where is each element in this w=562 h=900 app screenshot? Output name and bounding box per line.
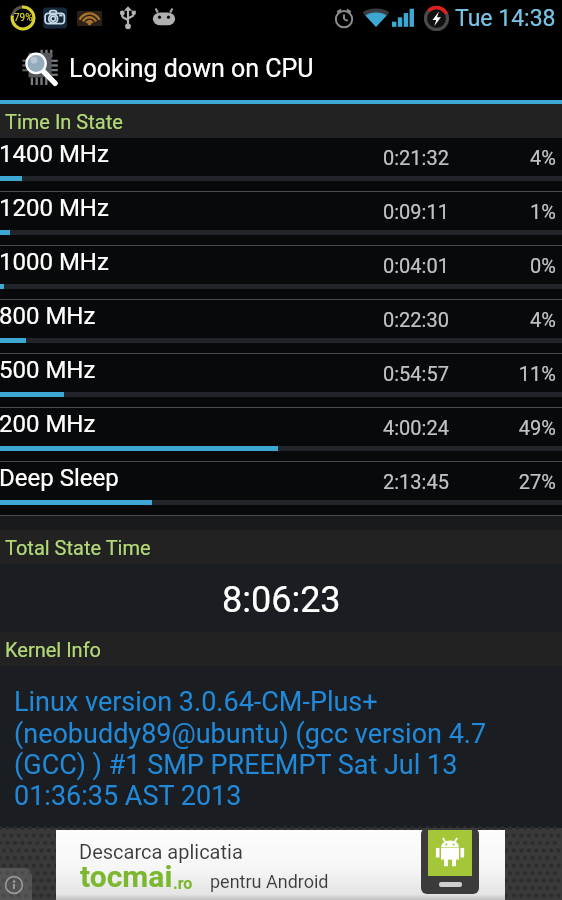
button[interactable]: Descarca aplicatia	[56, 830, 505, 900]
staticText: Total State Time	[5, 536, 151, 559]
staticText: 0:21:32	[383, 146, 449, 169]
staticText: 1%	[502, 200, 556, 223]
staticText: 1200 MHz	[0, 194, 109, 222]
staticText: 0%	[502, 254, 556, 277]
staticText: 1000 MHz	[0, 248, 109, 276]
staticText: 4%	[502, 308, 556, 331]
button[interactable]: Looking down on CPU	[0, 36, 562, 100]
staticText: pentru Android	[210, 871, 329, 892]
staticText: Time In State	[5, 110, 123, 133]
button[interactable]: Deep Sleep	[0, 462, 562, 516]
button[interactable]: 800 MHz	[0, 300, 562, 354]
button[interactable]: 1200 MHz	[0, 192, 562, 246]
staticText: 4:00:24	[383, 416, 449, 439]
staticText: 200 MHz	[0, 410, 96, 438]
staticText: 79%	[14, 12, 33, 24]
staticText: 0:04:01	[383, 254, 449, 277]
staticText: tocmai	[80, 859, 173, 894]
staticText: 0:09:11	[383, 200, 449, 223]
staticText: Looking down on CPU	[69, 54, 314, 83]
staticText: Descarca aplicatia	[79, 840, 243, 863]
staticText: .ro	[173, 874, 193, 893]
button[interactable]: Ad information	[4, 875, 24, 895]
staticText: 2:13:45	[383, 470, 449, 493]
staticText: 800 MHz	[0, 302, 96, 330]
staticText: Tue 14:38	[455, 5, 556, 32]
button[interactable]: 200 MHz	[0, 408, 562, 462]
staticText: 27%	[502, 470, 556, 493]
staticText: 11%	[502, 362, 556, 385]
staticText: Deep Sleep	[0, 464, 119, 492]
button[interactable]: 500 MHz	[0, 354, 562, 408]
staticText: 8:06:23	[222, 579, 341, 621]
staticText: 0:54:57	[383, 362, 449, 385]
button[interactable]: 1400 MHz	[0, 138, 562, 192]
staticText: 4%	[502, 146, 556, 169]
staticText: 1400 MHz	[0, 140, 109, 168]
staticText: Kernel Info	[5, 638, 101, 661]
staticText: 49%	[502, 416, 556, 439]
button[interactable]: 1000 MHz	[0, 246, 562, 300]
staticText: 500 MHz	[0, 356, 96, 384]
staticText: Linux version 3.0.64-CM-Plus+ (neobuddy8…	[14, 686, 522, 811]
staticText: 0:22:30	[383, 308, 449, 331]
